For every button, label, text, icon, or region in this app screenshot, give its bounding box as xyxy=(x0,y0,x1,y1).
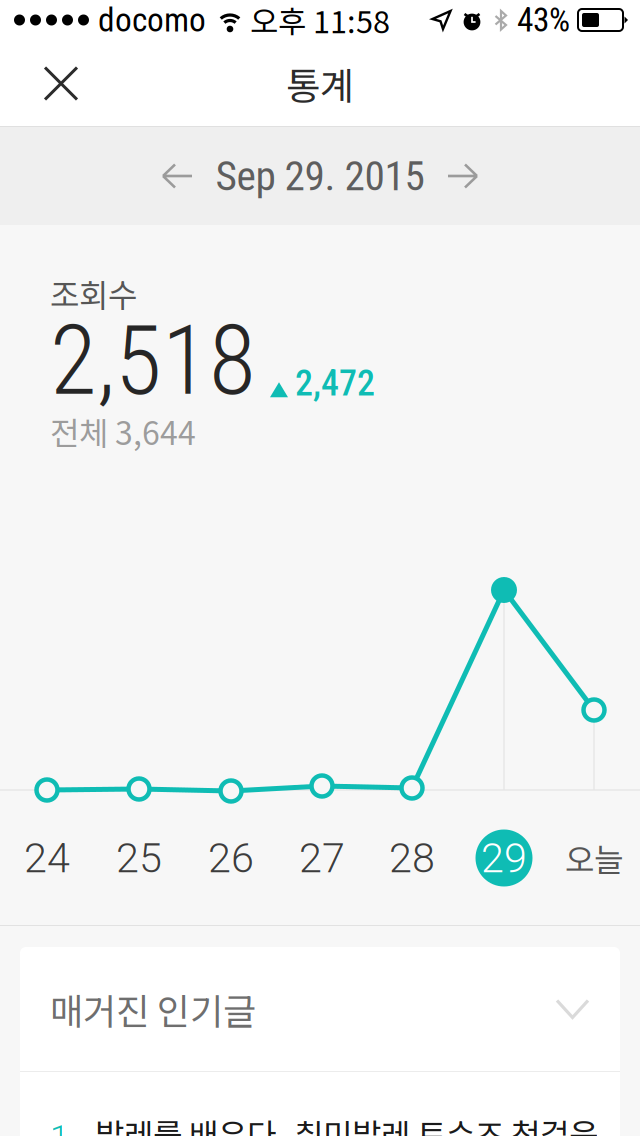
staticText: 조회수 xyxy=(50,270,137,316)
staticText: 24 xyxy=(24,834,70,882)
staticText: 43% xyxy=(517,0,570,40)
staticText: 27 xyxy=(299,834,345,882)
button[interactable]: 1 xyxy=(20,1072,620,1136)
staticText: 발레를 배우다_취미발레 토슈즈 첫걸음 xyxy=(95,1110,598,1136)
button[interactable]: 매거진 인기글 xyxy=(20,947,620,1071)
staticText: 28 xyxy=(389,834,435,882)
button[interactable]: 29 xyxy=(475,829,532,886)
staticText: docomo xyxy=(98,0,206,40)
staticText: 29 xyxy=(481,834,527,882)
staticText: 매거진 인기글 xyxy=(50,983,256,1035)
staticText: 전체 3,644 xyxy=(50,408,196,454)
staticText: Sep 29. 2015 xyxy=(215,152,424,200)
staticText: 1 xyxy=(50,1118,69,1136)
staticText: 오후 11:58 xyxy=(250,0,390,42)
staticText: 26 xyxy=(208,834,254,882)
staticText: 오늘 xyxy=(565,835,623,881)
staticText: 25 xyxy=(116,834,162,882)
staticText: 2,472 xyxy=(295,362,375,404)
button[interactable]: Next day xyxy=(424,133,500,219)
button[interactable]: Previous day xyxy=(139,133,215,219)
staticText: 통계 xyxy=(286,56,354,111)
staticText: 2,518 xyxy=(50,305,256,417)
button[interactable]: Close xyxy=(0,40,104,126)
